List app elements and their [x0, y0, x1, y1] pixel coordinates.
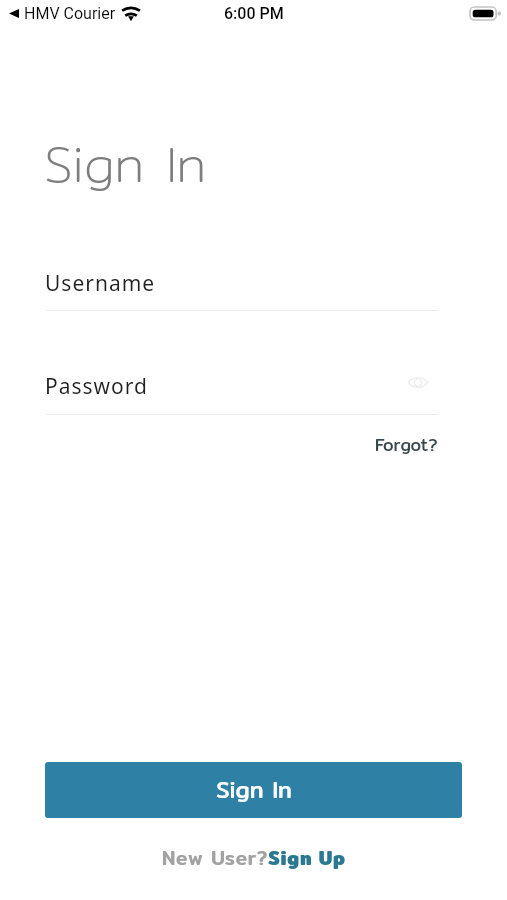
button[interactable]: Show password — [403, 369, 433, 395]
button[interactable]: Forgot? — [358, 430, 438, 458]
staticText: Password — [45, 372, 148, 401]
button[interactable]: Sign In — [45, 762, 462, 818]
button[interactable]: New User?Sign Up — [162, 843, 346, 873]
staticText: 6:00 PM — [224, 4, 284, 23]
staticText: HMV Courier — [24, 4, 116, 23]
staticText: Sign In — [216, 772, 292, 808]
staticText: Sign In — [44, 124, 206, 203]
staticText: Forgot? — [375, 431, 438, 458]
staticText: Username — [45, 269, 156, 298]
